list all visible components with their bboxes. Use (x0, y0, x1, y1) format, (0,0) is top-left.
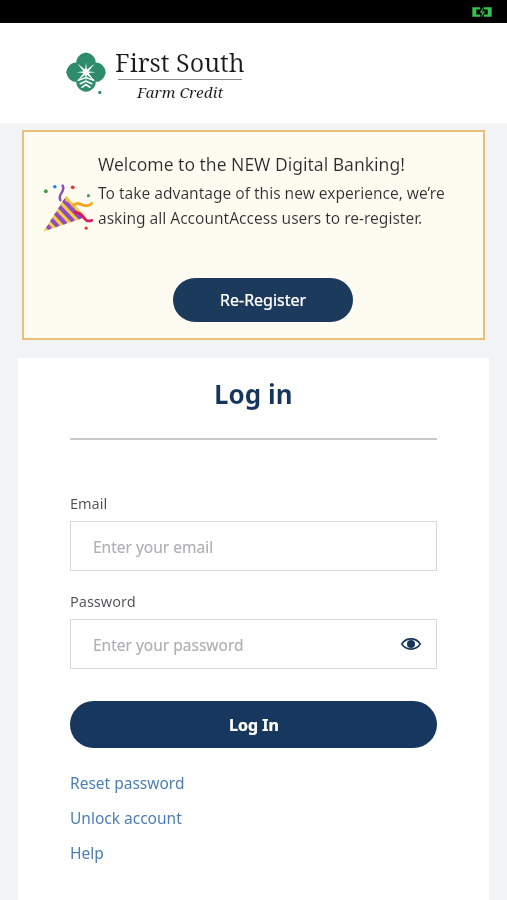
button[interactable]: Reset password (70, 772, 437, 793)
staticText: Re-Register (220, 289, 307, 311)
staticText: Email (70, 493, 108, 513)
staticText: To take advantage of this new experience… (98, 182, 471, 229)
button[interactable]: Enter your email (70, 521, 437, 571)
button[interactable]: Re-Register (173, 278, 353, 322)
staticText: Log in (214, 376, 293, 411)
button[interactable]: Unlock account (70, 807, 437, 828)
staticText: Help (70, 842, 104, 863)
staticText: Password (70, 591, 136, 611)
staticText: Enter your password (93, 634, 244, 655)
staticText: Welcome to the NEW Digital Banking! (98, 152, 405, 176)
staticText: Unlock account (70, 807, 182, 828)
button[interactable]: Log In (70, 701, 437, 748)
staticText: Farm Credit (137, 82, 224, 102)
button[interactable]: Show password (399, 632, 423, 656)
staticText: Reset password (70, 772, 185, 793)
other: Battery charging (471, 6, 493, 18)
button[interactable]: Help (70, 842, 437, 863)
button[interactable]: First South Farm Credit (63, 45, 245, 102)
button[interactable]: Enter your password (70, 619, 437, 669)
staticText: First South (115, 45, 245, 79)
staticText: Log In (229, 714, 279, 736)
staticText: Enter your email (93, 536, 214, 557)
